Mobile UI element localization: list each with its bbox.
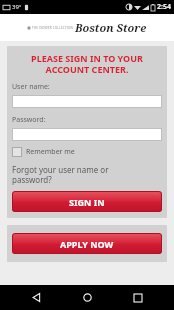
button[interactable]: Text field <box>12 95 162 108</box>
button[interactable]: Recent apps <box>123 285 153 310</box>
staticText: User name: <box>12 82 50 92</box>
staticText: Password: <box>12 115 46 125</box>
button[interactable]: Forgot your user name or password? <box>12 164 109 185</box>
staticText: Boston Store <box>75 20 147 35</box>
staticText: THE DENVER COLLECTION <box>32 26 73 30</box>
button[interactable]: Back <box>21 285 51 310</box>
staticText: SIGN IN <box>69 196 105 208</box>
button[interactable]: Remember me <box>12 147 75 157</box>
staticText: PLEASE SIGN IN TO YOUR ACCOUNT CENTER. <box>12 52 162 75</box>
button[interactable]: Text field <box>12 128 162 141</box>
staticText: 2:54 <box>157 2 171 12</box>
staticText: Remember me <box>26 147 75 157</box>
button[interactable]: SIGN IN <box>12 191 162 212</box>
staticText: 39° <box>12 3 22 11</box>
staticText: APPLY NOW <box>60 238 114 250</box>
button[interactable]: Home <box>72 285 102 310</box>
button[interactable]: APPLY NOW <box>12 233 162 254</box>
